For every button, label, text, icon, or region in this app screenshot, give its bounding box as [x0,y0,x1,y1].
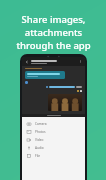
staticText: Video [35,138,44,142]
button[interactable] [25,71,65,79]
other: More options [79,60,82,63]
button[interactable]: Video [22,136,85,144]
button[interactable]: Audio [22,144,85,152]
button[interactable]: Shared photo [48,94,82,111]
button[interactable]: File [22,152,85,160]
staticText: Photos [35,130,46,134]
staticText: Share images, attachments through the ap… [16,13,91,52]
staticText: File [35,154,41,158]
button[interactable]: Photos [22,128,85,136]
button[interactable] [25,86,82,88]
staticText: Camera [35,122,47,126]
staticText: Audio [35,146,44,150]
button[interactable]: Back [22,57,85,66]
other: Back [25,60,29,64]
button[interactable]: Camera [22,120,85,128]
